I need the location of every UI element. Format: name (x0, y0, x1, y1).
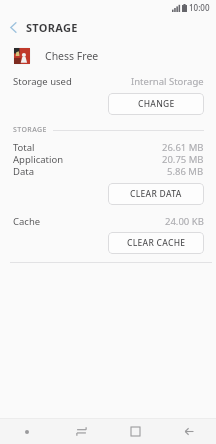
staticText: 20.75 MB (162, 153, 204, 165)
button[interactable]: CHANGE (108, 93, 204, 115)
button[interactable]: Recent apps (54, 419, 108, 444)
staticText: 24.00 KB (165, 215, 204, 227)
staticText: STORAGE (26, 20, 78, 35)
staticText: Internal Storage (131, 75, 204, 88)
button[interactable]: CLEAR DATA (108, 183, 204, 205)
staticText: 5.86 MB (167, 165, 204, 177)
staticText: Cache (13, 215, 41, 227)
button[interactable]: Menu (0, 419, 54, 444)
staticText: CLEAR CACHE (127, 237, 186, 249)
staticText: Total (13, 141, 35, 153)
button[interactable]: Home (108, 419, 162, 444)
staticText: CLEAR DATA (130, 188, 182, 200)
staticText: 26.61 MB (162, 141, 204, 153)
staticText: CHANGE (138, 98, 175, 110)
button[interactable]: Back (0, 15, 26, 40)
staticText: Application (13, 153, 64, 165)
staticText: STORAGE (13, 125, 47, 135)
staticText: 10:00 (189, 2, 210, 13)
button[interactable]: Back (162, 419, 216, 444)
staticText: Data (13, 165, 35, 177)
button[interactable]: CLEAR CACHE (108, 232, 204, 254)
staticText: Chess Free (45, 49, 99, 63)
button[interactable]: Chess Free (0, 40, 216, 72)
staticText: Storage used (13, 75, 72, 88)
button[interactable]: Storage used (0, 72, 216, 90)
